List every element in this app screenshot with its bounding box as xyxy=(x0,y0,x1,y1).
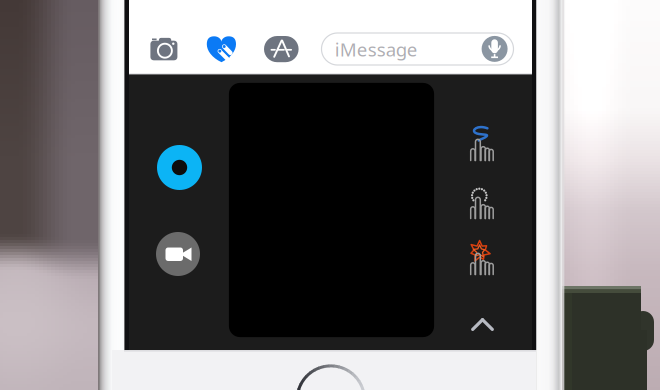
button[interactable]: Expand xyxy=(471,318,494,331)
button[interactable]: iMessage xyxy=(321,33,513,65)
button[interactable]: Digital Touch xyxy=(207,36,236,62)
button[interactable]: Home xyxy=(296,364,366,390)
staticText: iMessage xyxy=(335,37,418,62)
button[interactable]: Record video xyxy=(156,232,200,276)
button[interactable]: Camera xyxy=(150,38,177,60)
button[interactable]: Colour xyxy=(157,145,202,190)
button[interactable]: App Store xyxy=(264,36,299,62)
